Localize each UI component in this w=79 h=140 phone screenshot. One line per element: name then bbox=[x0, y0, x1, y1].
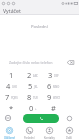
button[interactable]: 9 bbox=[43, 92, 64, 101]
button[interactable]: 2 bbox=[22, 70, 43, 79]
staticText: Oblíbené bbox=[4, 136, 16, 140]
button[interactable]: Options bbox=[59, 112, 79, 124]
button[interactable]: Poslední bbox=[19, 124, 39, 140]
staticText: JKL bbox=[34, 85, 38, 89]
staticText: Poslední bbox=[31, 24, 48, 30]
staticText: Kontakty bbox=[44, 136, 55, 140]
button[interactable]: Call bbox=[23, 114, 59, 123]
button[interactable]: 4 bbox=[0, 81, 22, 90]
staticText: Další bbox=[66, 136, 72, 140]
staticText: 7 bbox=[5, 92, 10, 101]
staticText: WXYZ bbox=[53, 96, 60, 100]
button[interactable]: Backspace bbox=[62, 57, 79, 68]
button[interactable]: 5 bbox=[22, 81, 43, 90]
button[interactable]: 7 bbox=[0, 92, 22, 101]
staticText: Zadejte číslo nebo telefon bbox=[9, 60, 53, 65]
button[interactable]: 1 bbox=[0, 70, 22, 79]
staticText: 0 bbox=[29, 103, 34, 112]
button[interactable]: 6 bbox=[43, 81, 64, 90]
button[interactable]: 3 bbox=[43, 70, 64, 79]
staticText: ABC bbox=[33, 74, 38, 78]
button[interactable]: 0 bbox=[22, 103, 43, 112]
staticText: 4 bbox=[6, 81, 11, 90]
staticText: 1 bbox=[9, 70, 14, 79]
staticText: 5 bbox=[28, 81, 33, 90]
staticText: 9 bbox=[47, 92, 52, 101]
button[interactable]: Add to contacts bbox=[5, 112, 23, 124]
staticText: 2 bbox=[27, 70, 32, 79]
staticText: GHI bbox=[12, 85, 17, 89]
staticText: Poslední bbox=[24, 136, 35, 140]
staticText: MNO bbox=[53, 85, 60, 89]
button[interactable]: 8 bbox=[22, 92, 43, 101]
staticText: 6 bbox=[47, 81, 52, 90]
staticText: * bbox=[9, 103, 14, 112]
staticText: 8 bbox=[27, 92, 32, 101]
button[interactable]: Další bbox=[59, 124, 79, 140]
staticText: PQRS bbox=[11, 96, 18, 100]
button[interactable]: * bbox=[0, 103, 22, 112]
staticText: # bbox=[51, 103, 56, 112]
staticText: 3 bbox=[48, 70, 53, 79]
button[interactable]: # bbox=[43, 103, 64, 112]
staticText: TUV bbox=[33, 96, 38, 100]
button[interactable]: Kontakty bbox=[39, 124, 59, 140]
staticText: + bbox=[35, 107, 37, 111]
button[interactable]: Oblíbené bbox=[0, 124, 19, 140]
staticText: DEF bbox=[54, 74, 59, 78]
staticText: Vytáčet bbox=[3, 7, 21, 14]
